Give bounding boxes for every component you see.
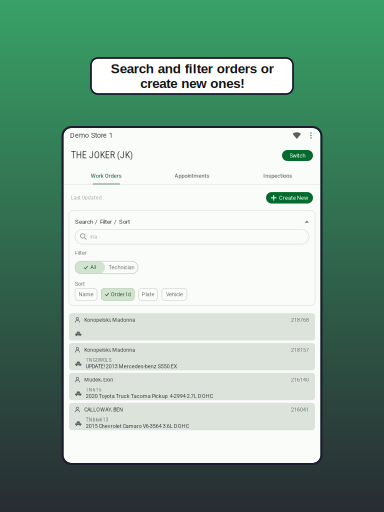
button[interactable]: Konopelski, Madonna xyxy=(69,343,315,370)
button[interactable]: Inspections xyxy=(235,168,320,185)
staticText: CALLOWAY, BEN xyxy=(84,407,123,413)
button[interactable]: Collapse xyxy=(305,220,309,223)
staticText: Inspections xyxy=(263,172,292,179)
staticText: Technician xyxy=(108,264,134,271)
button[interactable]: More options xyxy=(301,131,314,139)
staticText: ina xyxy=(90,234,97,240)
staticText: Search and filter orders or create new o… xyxy=(110,61,273,91)
staticText: TN 615 xyxy=(86,387,102,393)
staticText: Appointments xyxy=(174,172,209,179)
button[interactable]: Order Id xyxy=(101,288,134,300)
staticText: Switch xyxy=(289,152,305,159)
button[interactable]: Work Orders xyxy=(63,168,149,185)
staticText: Demo Store 1 xyxy=(70,131,113,139)
button[interactable]: Plate xyxy=(139,288,158,300)
staticText: All xyxy=(90,264,96,271)
staticText: Order Id xyxy=(111,291,131,298)
button[interactable]: Create New xyxy=(266,192,313,204)
staticText: Konopelski, Madonna xyxy=(84,317,135,323)
staticText: 216140 xyxy=(291,377,309,383)
staticText: TN bkv613 xyxy=(86,417,109,423)
button[interactable]: Appointments xyxy=(149,168,235,185)
staticText: Konopelski, Madonna xyxy=(84,347,135,353)
button[interactable]: All xyxy=(75,261,105,274)
staticText: Create New xyxy=(279,194,308,201)
staticText: 218768 xyxy=(291,317,309,323)
staticText: Plate xyxy=(142,291,155,298)
staticText: Filter xyxy=(75,250,87,256)
staticText: Work Orders xyxy=(91,172,122,179)
staticText: 216041 xyxy=(291,407,309,413)
staticText: Search / Filter / Sort xyxy=(75,218,130,225)
button[interactable]: Mudek, Elon xyxy=(69,373,315,400)
button[interactable]: CALLOWAY, BEN xyxy=(69,403,315,430)
button[interactable]: Technician xyxy=(105,261,138,274)
staticText: TN GOWOLS xyxy=(86,357,112,363)
staticText: Last Updated xyxy=(71,195,102,201)
staticText: Name xyxy=(78,291,93,298)
staticText: 2020 Toyota Truck Tacoma Pickup 4-2994 2… xyxy=(86,393,213,399)
button[interactable]: Switch xyxy=(282,150,313,161)
staticText: Sort xyxy=(75,281,85,287)
button[interactable]: Konopelski, Madonna xyxy=(69,313,315,340)
staticText: UPDATE! 2013 Mercedes-benz S550 EX xyxy=(86,363,177,369)
staticText: 218157 xyxy=(291,347,309,353)
staticText: Mudek, Elon xyxy=(84,377,113,383)
button[interactable]: Name xyxy=(75,288,97,300)
button[interactable]: Vehicle xyxy=(162,288,187,300)
staticText: Vehicle xyxy=(166,291,183,298)
staticText: 2015 Chevrolet Camaro V6-3564 3.6L DOHC xyxy=(86,423,189,429)
button[interactable]: Wi-Fi xyxy=(293,131,301,139)
staticText: THE JOKER (JK) xyxy=(71,151,133,160)
